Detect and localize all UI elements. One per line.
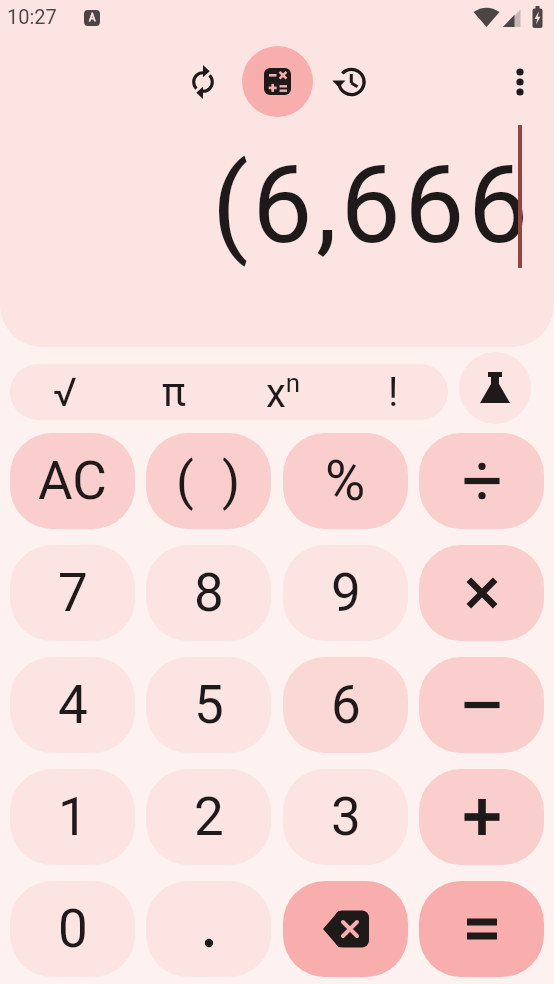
button[interactable] xyxy=(419,433,544,529)
button[interactable] xyxy=(146,881,271,977)
button[interactable] xyxy=(419,545,544,641)
staticText: % xyxy=(325,449,366,513)
button[interactable]: % xyxy=(283,433,408,529)
staticText: 2 xyxy=(194,786,224,848)
button[interactable]: 2 xyxy=(146,769,271,865)
button[interactable] xyxy=(419,657,544,753)
button[interactable]: 1 xyxy=(10,769,135,865)
staticText: 0 xyxy=(58,898,88,960)
button[interactable] xyxy=(332,64,368,100)
button[interactable]: 9 xyxy=(283,545,408,641)
staticText: 9 xyxy=(331,562,361,624)
staticText: ) xyxy=(222,451,241,512)
staticText: ! xyxy=(388,369,399,416)
button[interactable]: 3 xyxy=(283,769,408,865)
button[interactable]: 5 xyxy=(146,657,271,753)
button[interactable] xyxy=(419,769,544,865)
button[interactable]: ( xyxy=(146,433,271,529)
staticText: 4 xyxy=(58,674,88,736)
button[interactable]: π xyxy=(119,364,228,420)
staticText: xn xyxy=(266,368,301,417)
button[interactable]: 8 xyxy=(146,545,271,641)
staticText: 5 xyxy=(194,674,224,736)
staticText: A xyxy=(89,12,96,24)
button[interactable]: 4 xyxy=(10,657,135,753)
staticText: 6 xyxy=(331,674,361,736)
staticText: √ xyxy=(53,369,77,416)
staticText: 1 xyxy=(58,786,88,848)
button[interactable]: 7 xyxy=(10,545,135,641)
staticText: 3 xyxy=(331,786,361,848)
button[interactable] xyxy=(185,64,221,100)
staticText: (6,666 xyxy=(212,143,532,268)
button[interactable] xyxy=(419,881,544,977)
button[interactable]: AC xyxy=(10,433,135,529)
button[interactable] xyxy=(502,64,538,100)
button[interactable]: xn xyxy=(228,364,338,420)
button[interactable] xyxy=(283,881,408,977)
button[interactable]: 0 xyxy=(10,881,135,977)
button[interactable]: ! xyxy=(338,364,448,420)
staticText: ( xyxy=(176,451,194,512)
button[interactable]: √ xyxy=(10,364,119,420)
button[interactable] xyxy=(242,46,313,117)
staticText: π xyxy=(162,369,186,416)
staticText: AC xyxy=(38,450,107,512)
staticText: 8 xyxy=(194,562,224,624)
staticText: 7 xyxy=(58,562,88,624)
staticText: 10:27 xyxy=(7,5,57,28)
button[interactable]: 6 xyxy=(283,657,408,753)
button[interactable] xyxy=(459,352,531,424)
